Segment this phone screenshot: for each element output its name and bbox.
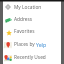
- staticText: Favorites: [14, 28, 35, 35]
- other: Favorites: [5, 29, 12, 36]
- other: Places: [4, 41, 12, 49]
- staticText: Recently Used: [14, 54, 46, 61]
- staticText: Places by: [14, 41, 36, 48]
- staticText: Yelp: [36, 41, 47, 48]
- button[interactable]: Favorites: [3, 25, 61, 38]
- other: Recently Used: [4, 54, 12, 62]
- staticText: Address: [14, 16, 33, 23]
- button[interactable]: Recently Used: [3, 51, 61, 64]
- button[interactable]: Address: [3, 13, 61, 25]
- staticText: My Location: [14, 4, 42, 11]
- other: Address: [5, 16, 12, 23]
- button[interactable]: Places: [3, 38, 61, 51]
- button[interactable]: My Location: [3, 1, 61, 13]
- other: My Location: [5, 4, 11, 10]
